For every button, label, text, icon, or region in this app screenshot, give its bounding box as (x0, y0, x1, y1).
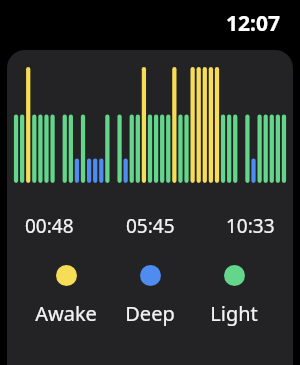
other: Deep (140, 265, 161, 286)
staticText: Light (210, 300, 258, 327)
staticText: 10:33 (226, 213, 275, 239)
button[interactable]: Deep (115, 300, 185, 327)
staticText: Awake (35, 300, 97, 327)
button[interactable]: Awake (31, 300, 101, 327)
button[interactable]: Sleep stages chart (7, 50, 293, 365)
other: Light (224, 265, 245, 286)
staticText: 05:45 (126, 213, 175, 239)
staticText: 00:48 (25, 213, 74, 239)
staticText: 12:07 (226, 9, 280, 38)
button[interactable]: Light (199, 300, 269, 327)
other: Sleep stages chart (13, 60, 287, 193)
other: Awake (56, 265, 77, 286)
staticText: Deep (125, 300, 175, 327)
